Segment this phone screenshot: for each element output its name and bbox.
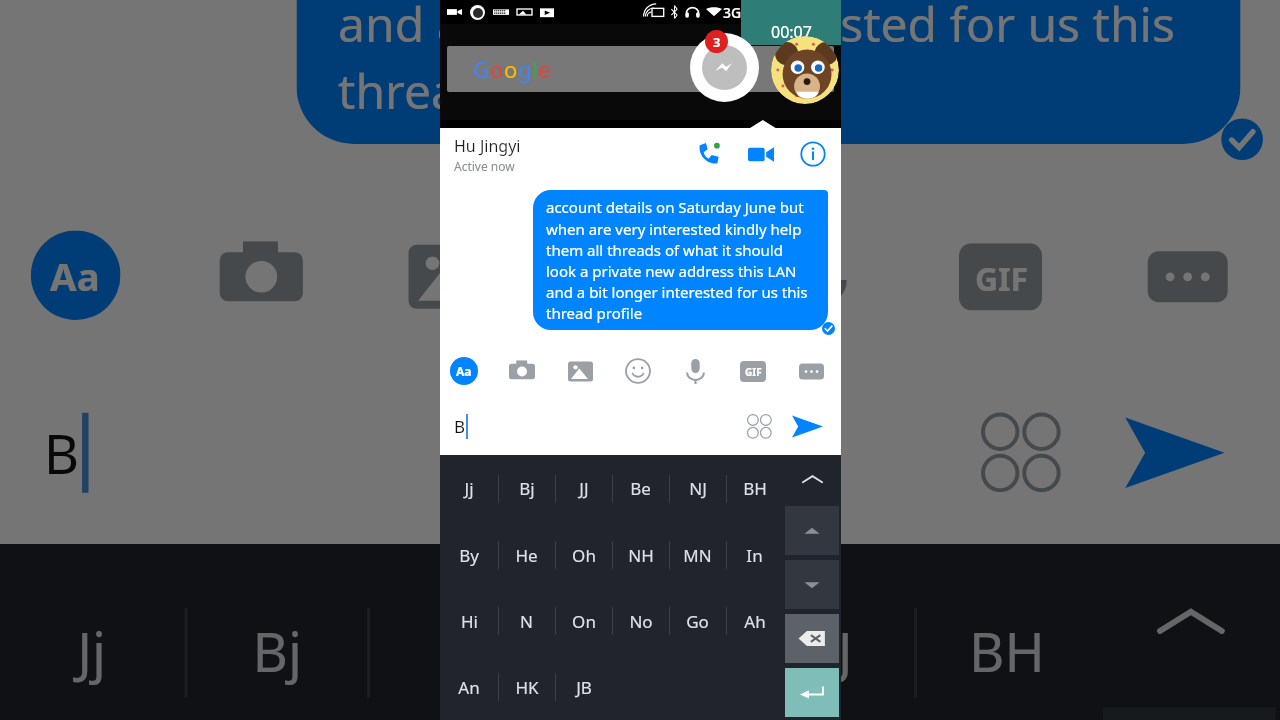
staticText: account details on Saturday June but whe… [338, 0, 1199, 122]
button[interactable]: Text formatting [442, 349, 486, 393]
button[interactable]: Voice message [673, 349, 717, 393]
button[interactable]: Go [669, 588, 726, 654]
button[interactable]: Messenger chat head [690, 33, 759, 102]
button[interactable]: N [498, 588, 555, 654]
staticText: 3 [713, 33, 721, 51]
staticText: G [473, 54, 490, 84]
button[interactable]: B [44, 413, 956, 493]
button[interactable]: An [440, 654, 498, 720]
staticText: Active now [454, 158, 515, 174]
staticText: GIF [745, 365, 762, 379]
button[interactable]: GIF [930, 205, 1071, 346]
button[interactable]: BH [726, 455, 783, 522]
staticText: Jj [76, 614, 108, 688]
button[interactable]: Gallery [558, 349, 602, 393]
button[interactable]: Emoji keyboard [956, 387, 1084, 515]
button[interactable]: Stickers [562, 205, 703, 346]
staticText: Oh [572, 544, 596, 567]
button[interactable]: Voice call [689, 134, 729, 174]
staticText: Hi [461, 610, 478, 633]
button[interactable]: Expand suggestions [783, 455, 841, 504]
staticText: JJ [444, 614, 476, 688]
button[interactable]: Conversation information [793, 134, 833, 174]
staticText: Be [607, 614, 674, 688]
staticText: GIF [975, 256, 1029, 301]
button[interactable]: Google search [447, 46, 834, 92]
staticText: Be [630, 477, 651, 500]
button[interactable]: Text formatting [5, 205, 146, 346]
button[interactable]: Gallery [376, 205, 517, 346]
button[interactable]: NJ [732, 544, 914, 720]
button[interactable]: Jj [0, 544, 184, 720]
button[interactable]: No [612, 588, 669, 654]
button[interactable]: Backspace [785, 614, 839, 663]
staticText: HK [515, 676, 539, 699]
button[interactable]: Enter [785, 668, 839, 717]
button[interactable]: account details on Saturday June but whe… [296, 0, 1240, 144]
staticText: NJ [689, 477, 707, 500]
button[interactable]: Emoji keyboard [739, 406, 779, 446]
button[interactable]: Hi [440, 588, 498, 654]
button[interactable]: account details on Saturday June but whe… [533, 190, 828, 330]
button[interactable]: He [498, 522, 555, 588]
staticText: He [515, 544, 538, 567]
staticText: In [746, 544, 763, 567]
button[interactable]: Ah [726, 588, 783, 654]
button[interactable]: Send [785, 404, 829, 448]
staticText: BH [968, 614, 1045, 688]
button[interactable]: By [440, 522, 498, 588]
staticText: JB [576, 676, 592, 699]
staticText: e [538, 54, 551, 84]
button[interactable]: More options [1116, 205, 1256, 346]
staticText: Bj [252, 614, 303, 688]
button[interactable]: In [726, 522, 783, 588]
staticText: N [520, 610, 533, 633]
button[interactable]: Camera [500, 349, 544, 393]
button[interactable]: Video call [741, 134, 781, 174]
button[interactable]: Profile picture [771, 36, 839, 104]
button[interactable]: Bj [184, 544, 367, 720]
button[interactable]: Oh [555, 522, 612, 588]
button[interactable]: MN [669, 522, 726, 588]
button[interactable]: On [555, 588, 612, 654]
staticText: Hu Jingyi [454, 135, 521, 157]
button[interactable]: BH [914, 544, 1096, 720]
button[interactable]: NJ [669, 455, 726, 522]
button[interactable]: Stickers [616, 349, 660, 393]
staticText: account details on Saturday June but whe… [546, 197, 815, 323]
button[interactable]: Camera [191, 205, 332, 346]
staticText: NH [628, 544, 654, 567]
button[interactable]: More options [789, 349, 833, 393]
button[interactable]: Scroll down [785, 560, 839, 609]
button[interactable]: B [454, 414, 739, 439]
staticText: o [490, 54, 504, 84]
button[interactable]: NH [612, 522, 669, 588]
button[interactable]: GIF [731, 349, 775, 393]
staticText: Jj [464, 477, 474, 500]
staticText: o [504, 54, 518, 84]
staticText: Aa [50, 250, 101, 301]
staticText: Ah [744, 610, 766, 633]
staticText: 3G [723, 3, 742, 22]
staticText: JJ [579, 477, 589, 500]
button[interactable]: HK [498, 654, 555, 720]
button[interactable]: Hu Jingyi [454, 135, 689, 174]
button[interactable]: Be [612, 455, 669, 522]
button[interactable]: JB [555, 654, 612, 720]
button[interactable]: Bj [498, 455, 555, 522]
staticText: B [454, 415, 466, 438]
staticText: Aa [456, 363, 472, 379]
staticText: NJ [796, 614, 853, 688]
button[interactable]: Be [549, 544, 732, 720]
button[interactable]: Expand suggestions [1096, 544, 1280, 701]
button[interactable]: Jj [440, 455, 498, 522]
staticText: Bj [519, 477, 535, 500]
button[interactable]: JJ [555, 455, 612, 522]
staticText: BH [743, 477, 767, 500]
button[interactable]: Scroll up [785, 506, 839, 555]
staticText: Go [686, 610, 709, 633]
button[interactable]: JJ [367, 544, 549, 720]
button[interactable]: Voice message [744, 205, 885, 346]
button[interactable]: Send [1103, 381, 1244, 522]
